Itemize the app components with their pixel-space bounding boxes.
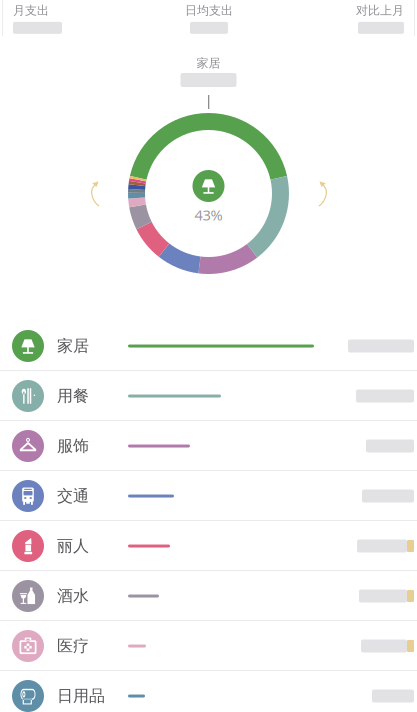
button[interactable]: 医疗 <box>0 621 417 671</box>
staticText: 医疗 <box>57 636 89 656</box>
button[interactable]: 日用品 <box>0 671 417 712</box>
staticText: 家居 <box>57 336 89 356</box>
button[interactable]: 酒水 <box>0 571 417 621</box>
button[interactable]: 交通 <box>0 471 417 521</box>
staticText: 日均支出 <box>185 3 233 18</box>
staticText: 用餐 <box>57 386 89 406</box>
staticText: 酒水 <box>57 586 89 606</box>
button[interactable]: 服饰 <box>0 421 417 471</box>
staticText: 日用品 <box>57 686 105 706</box>
button[interactable]: 丽人 <box>0 521 417 571</box>
staticText: 43% <box>194 205 222 224</box>
staticText: 月支出 <box>13 3 49 18</box>
button[interactable]: 家居 <box>0 321 417 371</box>
staticText: 对比上月 <box>356 3 404 18</box>
staticText: 服饰 <box>57 436 89 456</box>
button[interactable]: 用餐 <box>0 371 417 421</box>
staticText: 丽人 <box>57 536 89 556</box>
staticText: 家居 <box>196 56 220 71</box>
staticText: 交通 <box>57 486 89 506</box>
